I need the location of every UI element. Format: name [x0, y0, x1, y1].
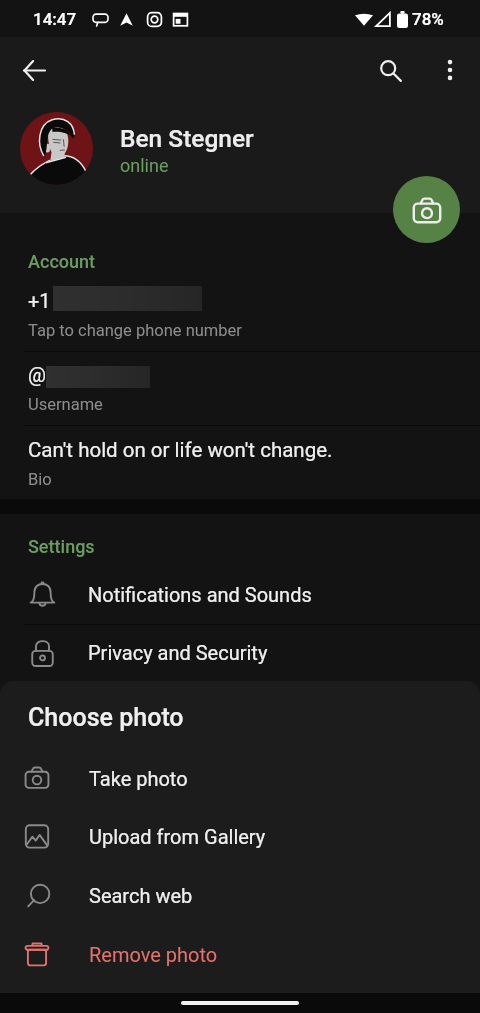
staticText: Upload from Gallery [89, 825, 266, 848]
staticText: Ben Stegner [120, 124, 254, 153]
button[interactable]: Privacy and Security [0, 622, 480, 682]
staticText: 78% [412, 9, 444, 29]
button[interactable]: Settings [28, 536, 95, 557]
button[interactable]: Change profile photo [393, 176, 460, 243]
button[interactable]: Remove photo [0, 925, 480, 983]
staticText: Account [28, 251, 96, 272]
staticText: Can't hold on or life won't change. [28, 438, 333, 462]
button[interactable]: Upload from Gallery [0, 807, 480, 865]
button[interactable]: Notifications and Sounds [0, 564, 480, 624]
staticText: Settings [28, 536, 95, 557]
staticText: Search web [89, 884, 193, 907]
staticText: Bio [28, 470, 52, 489]
button[interactable]: Ben Stegner [0, 103, 480, 193]
staticText: @ [28, 363, 46, 386]
button[interactable]: Back [12, 48, 56, 92]
staticText: Username [28, 395, 103, 414]
staticText: Take photo [89, 767, 188, 790]
staticText: online [120, 155, 169, 176]
staticText: Privacy and Security [88, 641, 268, 664]
button[interactable]: @ [0, 359, 480, 429]
button[interactable]: Can't hold on or life won't change. [0, 436, 480, 505]
button[interactable]: +1 [0, 285, 480, 355]
button[interactable]: Take photo [0, 749, 480, 807]
staticText: Remove photo [89, 943, 218, 966]
staticText: 14:47 [33, 9, 77, 29]
button[interactable]: Account [28, 251, 96, 272]
button[interactable]: More options [428, 48, 472, 92]
staticText: Choose photo [28, 703, 184, 732]
staticText: Tap to change phone number [28, 321, 242, 340]
staticText: +1 [28, 289, 51, 312]
button[interactable]: Search [368, 48, 412, 92]
staticText: Notifications and Sounds [88, 583, 312, 606]
button[interactable]: Search web [0, 866, 480, 924]
